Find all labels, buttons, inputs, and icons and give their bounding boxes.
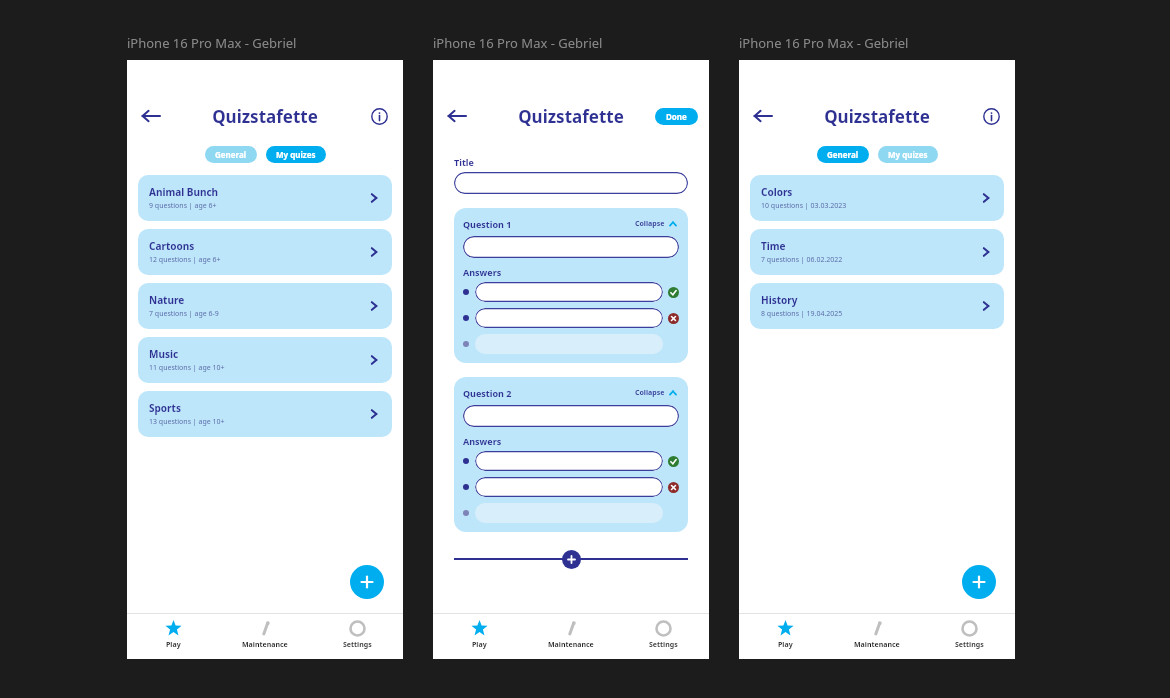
staticText: Quizstafette bbox=[824, 105, 930, 128]
button[interactable]: Settings bbox=[311, 614, 403, 659]
staticText: Maintenance bbox=[242, 640, 288, 650]
staticText: General bbox=[827, 149, 859, 160]
button[interactable]: Settings bbox=[923, 614, 1015, 659]
button[interactable]: Back bbox=[443, 102, 471, 130]
button[interactable]: Sports bbox=[138, 391, 392, 437]
staticText: Colors bbox=[761, 185, 793, 199]
button[interactable]: History bbox=[750, 283, 1004, 329]
staticText: 7 questions | 06.02.2022 bbox=[761, 255, 843, 265]
staticText: Cartoons bbox=[149, 239, 195, 253]
staticText: Title bbox=[454, 156, 474, 168]
button[interactable]: Add quiz bbox=[962, 565, 996, 599]
staticText: Collapse bbox=[635, 219, 665, 229]
button[interactable]: General bbox=[205, 146, 257, 163]
staticText: Quizstafette bbox=[212, 105, 318, 128]
staticText: Time bbox=[761, 239, 786, 253]
button[interactable]: Colors bbox=[750, 175, 1004, 221]
button[interactable]: Animal Bunch bbox=[138, 175, 392, 221]
staticText: 7 questions | age 6-9 bbox=[149, 309, 219, 319]
staticText: iPhone 16 Pro Max - Gebriel bbox=[433, 34, 603, 52]
button[interactable]: My quizes bbox=[878, 146, 938, 163]
button[interactable]: Settings bbox=[617, 614, 709, 659]
staticText: 9 questions | age 6+ bbox=[149, 201, 217, 211]
button[interactable]: Info bbox=[978, 103, 1004, 129]
staticText: Question 1 bbox=[463, 218, 512, 230]
staticText: Play bbox=[472, 640, 487, 650]
button[interactable]: Info bbox=[366, 103, 392, 129]
staticText: iPhone 16 Pro Max - Gebriel bbox=[739, 34, 909, 52]
button[interactable]: Maintenance bbox=[525, 614, 617, 659]
staticText: Done bbox=[666, 111, 687, 122]
staticText: Settings bbox=[649, 640, 678, 650]
staticText: Answers bbox=[463, 435, 502, 447]
staticText: 12 questions | age 6+ bbox=[149, 255, 221, 265]
button[interactable]: Maintenance bbox=[219, 614, 311, 659]
staticText: Maintenance bbox=[854, 640, 900, 650]
staticText: Play bbox=[778, 640, 793, 650]
staticText: Music bbox=[149, 347, 179, 361]
button[interactable]: Back bbox=[137, 102, 165, 130]
button[interactable] bbox=[475, 308, 663, 328]
staticText: iPhone 16 Pro Max - Gebriel bbox=[127, 34, 297, 52]
button[interactable] bbox=[475, 503, 663, 523]
button[interactable]: Add question bbox=[562, 550, 581, 569]
staticText: Maintenance bbox=[548, 640, 594, 650]
button[interactable]: Add quiz bbox=[350, 565, 384, 599]
staticText: Question 2 bbox=[463, 387, 512, 399]
button[interactable]: Collapse bbox=[633, 386, 679, 400]
button[interactable]: Done bbox=[655, 108, 698, 125]
staticText: Settings bbox=[955, 640, 984, 650]
button[interactable]: Time bbox=[750, 229, 1004, 275]
staticText: 8 questions | 19.04.2025 bbox=[761, 309, 843, 319]
staticText: Nature bbox=[149, 293, 185, 307]
staticText: Settings bbox=[343, 640, 372, 650]
button[interactable] bbox=[463, 236, 679, 258]
button[interactable] bbox=[475, 334, 663, 354]
staticText: Animal Bunch bbox=[149, 185, 219, 199]
staticText: Collapse bbox=[635, 388, 665, 398]
button[interactable]: Cartoons bbox=[138, 229, 392, 275]
button[interactable]: Back bbox=[749, 102, 777, 130]
button[interactable]: Music bbox=[138, 337, 392, 383]
staticText: 10 questions | 03.03.2023 bbox=[761, 201, 847, 211]
button[interactable]: Play bbox=[127, 614, 219, 659]
staticText: My quizes bbox=[888, 149, 928, 160]
staticText: Quizstafette bbox=[518, 105, 624, 128]
button[interactable]: Play bbox=[739, 614, 831, 659]
button[interactable]: My quizes bbox=[266, 146, 326, 163]
button[interactable] bbox=[454, 172, 688, 194]
button[interactable] bbox=[475, 477, 663, 497]
button[interactable]: Play bbox=[433, 614, 525, 659]
staticText: Sports bbox=[149, 401, 181, 415]
button[interactable]: General bbox=[817, 146, 869, 163]
staticText: Answers bbox=[463, 266, 502, 278]
button[interactable]: Nature bbox=[138, 283, 392, 329]
button[interactable]: Collapse bbox=[633, 217, 679, 231]
staticText: 13 questions | age 10+ bbox=[149, 417, 225, 427]
staticText: 11 questions | age 10+ bbox=[149, 363, 225, 373]
staticText: Play bbox=[166, 640, 181, 650]
button[interactable]: Maintenance bbox=[831, 614, 923, 659]
staticText: My quizes bbox=[276, 149, 316, 160]
button[interactable] bbox=[475, 451, 663, 471]
button[interactable] bbox=[463, 405, 679, 427]
staticText: General bbox=[215, 149, 247, 160]
staticText: History bbox=[761, 293, 798, 307]
button[interactable] bbox=[475, 282, 663, 302]
